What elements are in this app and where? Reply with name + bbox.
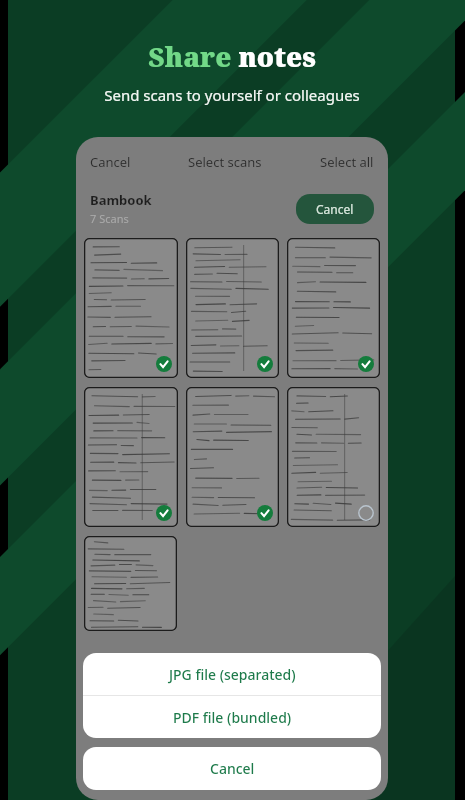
staticText: Cancel <box>316 201 354 217</box>
button[interactable]: Cancel <box>83 747 381 790</box>
button[interactable]: PDF file (bundled) <box>83 696 381 738</box>
button[interactable]: Scan 2 <box>186 238 279 378</box>
staticText: Select all <box>320 153 374 171</box>
button[interactable]: Scan 4 <box>84 387 178 527</box>
staticText: PDF file (bundled) <box>173 708 292 727</box>
staticText: 7 Scans <box>90 211 129 226</box>
button[interactable]: Cancel <box>90 153 131 171</box>
staticText: Bambook <box>90 191 152 209</box>
staticText: Cancel <box>210 759 255 778</box>
button[interactable]: Scan 5 <box>186 387 279 527</box>
button[interactable]: Scan 6 <box>287 387 380 527</box>
staticText: Select scans <box>188 153 262 171</box>
staticText: Send scans to yourself or colleagues <box>104 85 360 105</box>
button[interactable]: Scan 7 <box>84 536 177 631</box>
button[interactable]: Scan 1 <box>84 238 178 378</box>
button[interactable]: Select all <box>320 153 374 171</box>
button[interactable]: Cancel <box>296 194 374 224</box>
button[interactable]: JPG file (separated) <box>83 653 381 695</box>
staticText: Share notes <box>148 38 316 75</box>
button[interactable]: Scan 3 <box>287 238 380 378</box>
staticText: Cancel <box>90 153 131 171</box>
staticText: JPG file (separated) <box>169 665 296 684</box>
